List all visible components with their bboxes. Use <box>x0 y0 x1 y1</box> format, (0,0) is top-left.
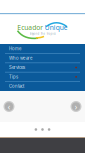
button[interactable]: Services <box>0 63 85 73</box>
button[interactable]: Previous slide <box>2 100 15 113</box>
staticText: › <box>74 100 77 113</box>
staticText: Beyond The Tropics <box>29 32 55 35</box>
button[interactable]: Contact <box>0 82 85 91</box>
staticText: Contact <box>9 84 24 89</box>
staticText: Ecuador <box>17 23 43 32</box>
staticText: Home <box>9 46 21 51</box>
staticText: Unique <box>45 23 68 32</box>
button[interactable]: Next slide <box>69 100 82 113</box>
staticText: Services <box>9 65 25 70</box>
staticText: ‹ <box>7 100 10 113</box>
button[interactable]: Tips <box>0 73 85 82</box>
button[interactable]: Who we are <box>0 54 85 63</box>
staticText: Tips <box>9 74 18 79</box>
button[interactable]: Home <box>0 44 85 54</box>
staticText: Who we are <box>9 55 32 61</box>
